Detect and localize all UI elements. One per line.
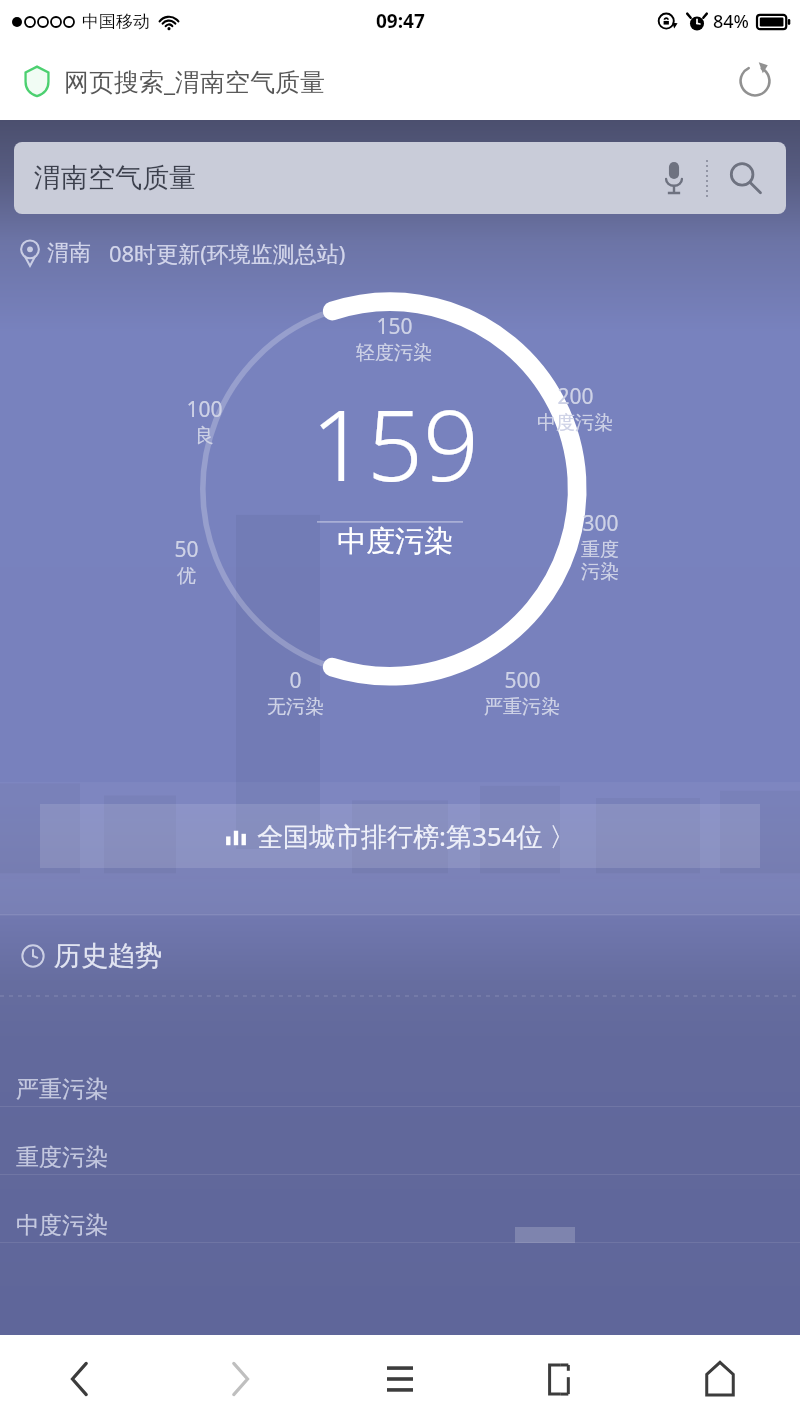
button[interactable]: 网页搜索_渭南空气质量 (24, 64, 326, 98)
button[interactable]: 全国城市排行榜:第354位 〉 (40, 804, 760, 868)
button[interactable]: 历史趋势 (20, 939, 162, 973)
staticText: 500 (504, 666, 541, 695)
staticText: 严重污染 (484, 695, 560, 719)
staticText: 中度污染 (337, 523, 453, 560)
staticText: 重度污染 (16, 1143, 108, 1172)
button[interactable]: Menu (320, 1335, 480, 1423)
button[interactable]: Back (0, 1335, 160, 1423)
button[interactable]: 渭南空气质量 (14, 142, 786, 214)
staticText: 150 (376, 312, 413, 341)
staticText: 良 (195, 424, 214, 448)
button[interactable]: Forward (160, 1335, 320, 1423)
staticText: 159 (311, 376, 479, 509)
staticText: 100 (186, 395, 223, 424)
staticText: 渭南 (47, 239, 91, 267)
staticText: 历史趋势 (54, 939, 162, 973)
staticText: 300 (582, 509, 619, 538)
staticText: 08时更新(环境监测总站) (109, 238, 346, 268)
staticText: 轻度污染 (356, 341, 432, 365)
staticText: 网页搜索_渭南空气质量 (64, 64, 326, 98)
button[interactable]: 渭南 (18, 238, 800, 268)
button[interactable]: Search (720, 153, 770, 203)
staticText: 全国城市排行榜:第354位 〉 (257, 818, 576, 854)
staticText: 84% (713, 9, 749, 34)
staticText: 严重污染 (16, 1075, 108, 1104)
button[interactable]: Tabs (480, 1335, 640, 1423)
staticText: 200 (557, 382, 594, 411)
staticText: 中度污染 (16, 1211, 108, 1240)
button[interactable]: Refresh (730, 56, 780, 106)
button[interactable]: Home (640, 1335, 800, 1423)
staticText: 09:47 (376, 8, 425, 34)
staticText: 优 (177, 564, 196, 588)
staticText: 渭南空气质量 (34, 161, 196, 195)
staticText: 0 (289, 666, 302, 695)
button[interactable]: Voice search (652, 156, 696, 200)
staticText: 重度 污染 (581, 538, 619, 583)
staticText: 中度污染 (537, 411, 613, 435)
staticText: 无污染 (267, 695, 324, 719)
staticText: 中国移动 (82, 11, 150, 32)
staticText: 50 (174, 535, 199, 564)
